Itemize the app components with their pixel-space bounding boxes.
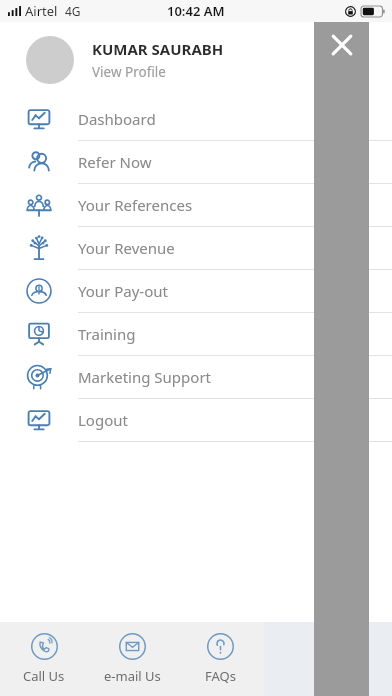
button[interactable]: KUMAR SAURABH	[0, 22, 392, 98]
staticText: View Profile	[92, 63, 166, 81]
staticText: Call Us	[23, 667, 65, 685]
button[interactable]: Call Us	[0, 622, 88, 696]
staticText: 10:42 AM	[167, 2, 225, 20]
button[interactable]: Dashboard	[0, 98, 392, 141]
button[interactable]: Training	[0, 313, 392, 356]
staticText: Your Pay-out	[78, 281, 168, 301]
staticText: Your References	[78, 195, 193, 215]
staticText: Your Revenue	[78, 238, 175, 258]
button[interactable]: Logout	[0, 399, 392, 442]
button[interactable]: Refer Now	[0, 141, 392, 184]
staticText: 4G	[65, 3, 81, 19]
staticText: Training	[78, 324, 136, 344]
staticText: Airtel	[25, 2, 58, 20]
button[interactable]: Close menu	[314, 22, 369, 696]
staticText: Logout	[78, 410, 128, 430]
staticText: Refer Now	[78, 152, 152, 172]
button[interactable]: Your References	[0, 184, 392, 227]
staticText: Dashboard	[78, 109, 156, 129]
button[interactable]: e-mail Us	[88, 622, 176, 696]
staticText: KUMAR SAURABH	[92, 39, 224, 59]
button[interactable]: Marketing Support	[0, 356, 392, 399]
staticText: Marketing Support	[78, 367, 212, 387]
button[interactable]: Your Revenue	[0, 227, 392, 270]
staticText: FAQs	[205, 667, 236, 685]
staticText: e-mail Us	[104, 667, 161, 685]
button[interactable]: Your Pay-out	[0, 270, 392, 313]
button[interactable]: FAQs	[176, 622, 264, 696]
